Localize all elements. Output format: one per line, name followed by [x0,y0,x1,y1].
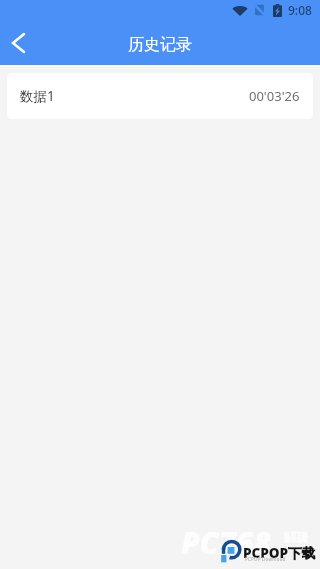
button[interactable]: 数据1 [7,73,313,119]
staticText: 数据1 [20,87,55,105]
staticText: PC768 [181,522,271,563]
staticText: PCPOP Download [245,556,286,562]
staticText: PCPOP下载 [243,543,315,562]
staticText: 9:08 [288,2,312,18]
button[interactable]: Back [0,21,40,65]
staticText: 应用下载 游戏攻略 [284,531,308,544]
staticText: 历史记录 [128,35,192,55]
staticText: 00'03'26 [249,87,300,105]
